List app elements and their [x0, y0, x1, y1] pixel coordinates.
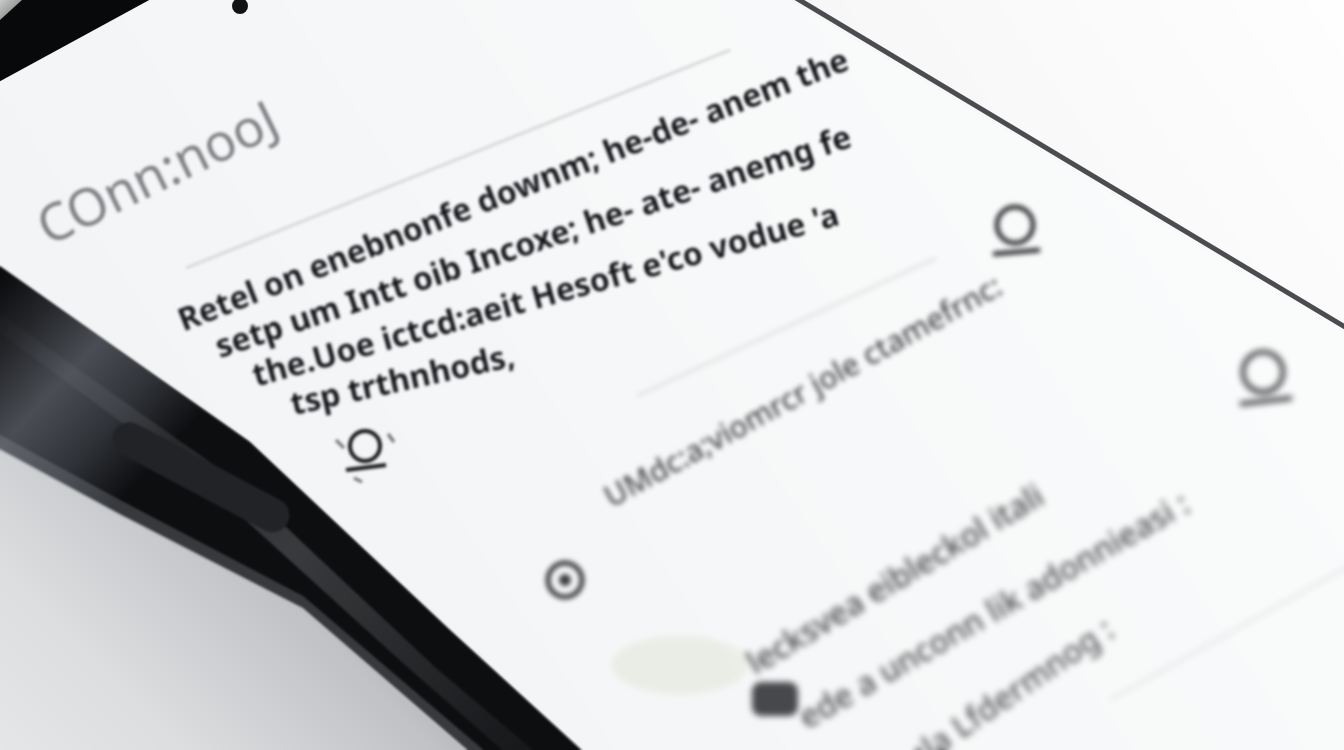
staticText: tsp trthnhods,	[286, 332, 519, 425]
button[interactable]: the.Uoe ictcd:aeit Hesoft e'co vodue 'a	[247, 191, 845, 396]
staticText: the.Uoe ictcd:aeit Hesoft e'co vodue 'a	[247, 191, 845, 396]
button[interactable]: COnn:nooJ	[24, 82, 289, 260]
staticText: UMdc:a;viomrcr jole ctamefrnc:	[596, 264, 1009, 516]
button[interactable]: setp um Intt oib Incoxe; he- ate- anemg …	[209, 114, 857, 368]
button[interactable]: Profile	[985, 196, 1047, 258]
button[interactable]: Power button	[98, 452, 310, 512]
staticText: ede a unconn lik adonnieasi :	[790, 481, 1198, 738]
button[interactable]: Retel on enebnonfe downm; he-de- anem th…	[171, 37, 855, 341]
staticText: Retel on enebnonfe downm; he-de- anem th…	[171, 37, 855, 341]
button[interactable]: tsp trthnhods,	[286, 332, 519, 425]
staticText: lecksvea eibleckol itali	[738, 473, 1052, 684]
button[interactable]: Contact	[1233, 342, 1295, 404]
button[interactable]: UMdc:a;viomrcr jole ctamefrnc:	[596, 264, 1009, 516]
button[interactable]: sla Lfdermnog :	[900, 607, 1122, 750]
button[interactable]: Location	[538, 553, 592, 607]
staticText: COnn:nooJ	[24, 82, 289, 260]
button[interactable]: Account	[332, 418, 398, 484]
button[interactable]: Attachment	[752, 682, 798, 716]
staticText: setp um Intt oib Incoxe; he- ate- anemg …	[209, 114, 857, 368]
staticText: sla Lfdermnog :	[900, 607, 1122, 750]
button[interactable]: lecksvea eibleckol itali	[738, 473, 1052, 684]
button[interactable]: ede a unconn lik adonnieasi :	[790, 481, 1198, 738]
